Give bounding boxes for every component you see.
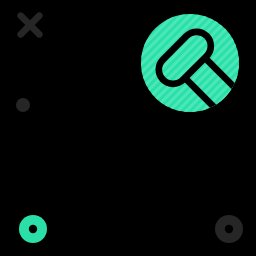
button[interactable]: Stop: [215, 215, 243, 243]
button[interactable]: Page indicator: [10, 92, 36, 118]
button[interactable]: Tool: [141, 14, 239, 112]
button[interactable]: Close: [14, 9, 46, 41]
button[interactable]: Record: [19, 215, 47, 243]
